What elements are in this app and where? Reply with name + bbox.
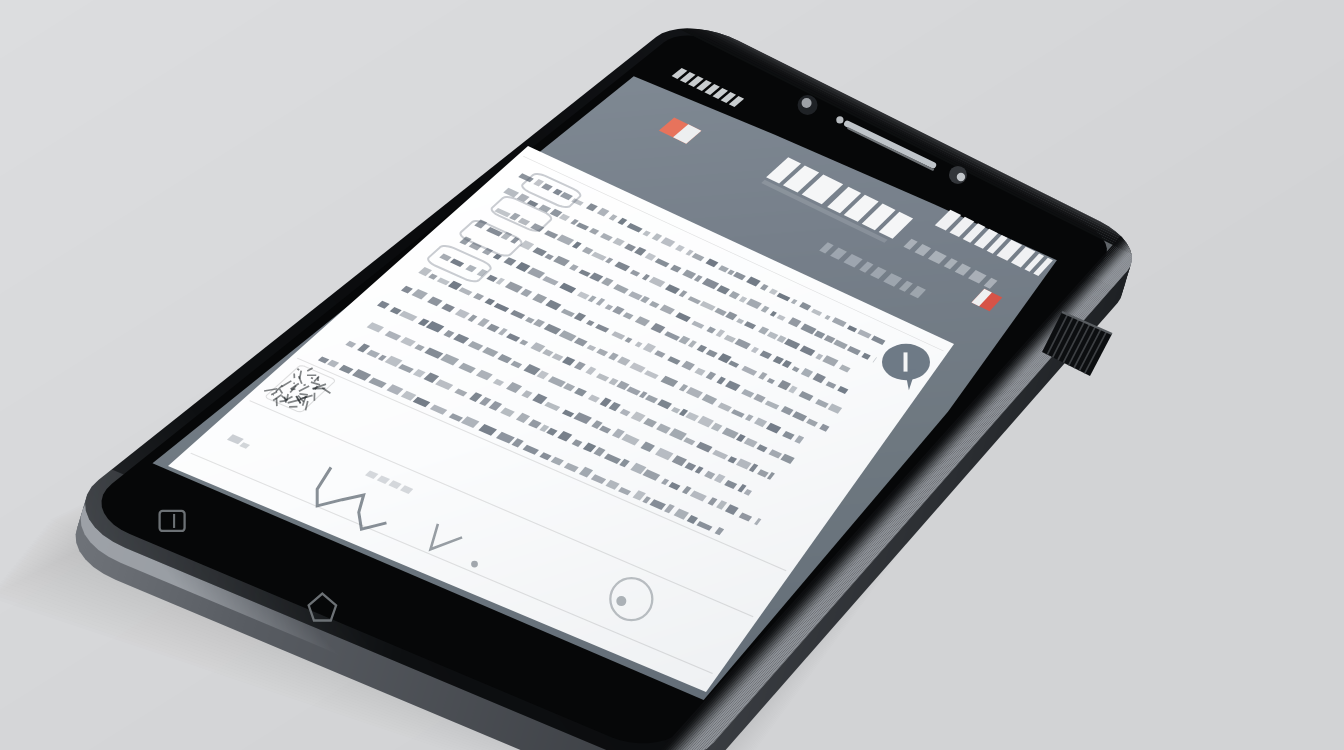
button[interactable]: Samsung phone displaying a document [0, 0, 1344, 750]
